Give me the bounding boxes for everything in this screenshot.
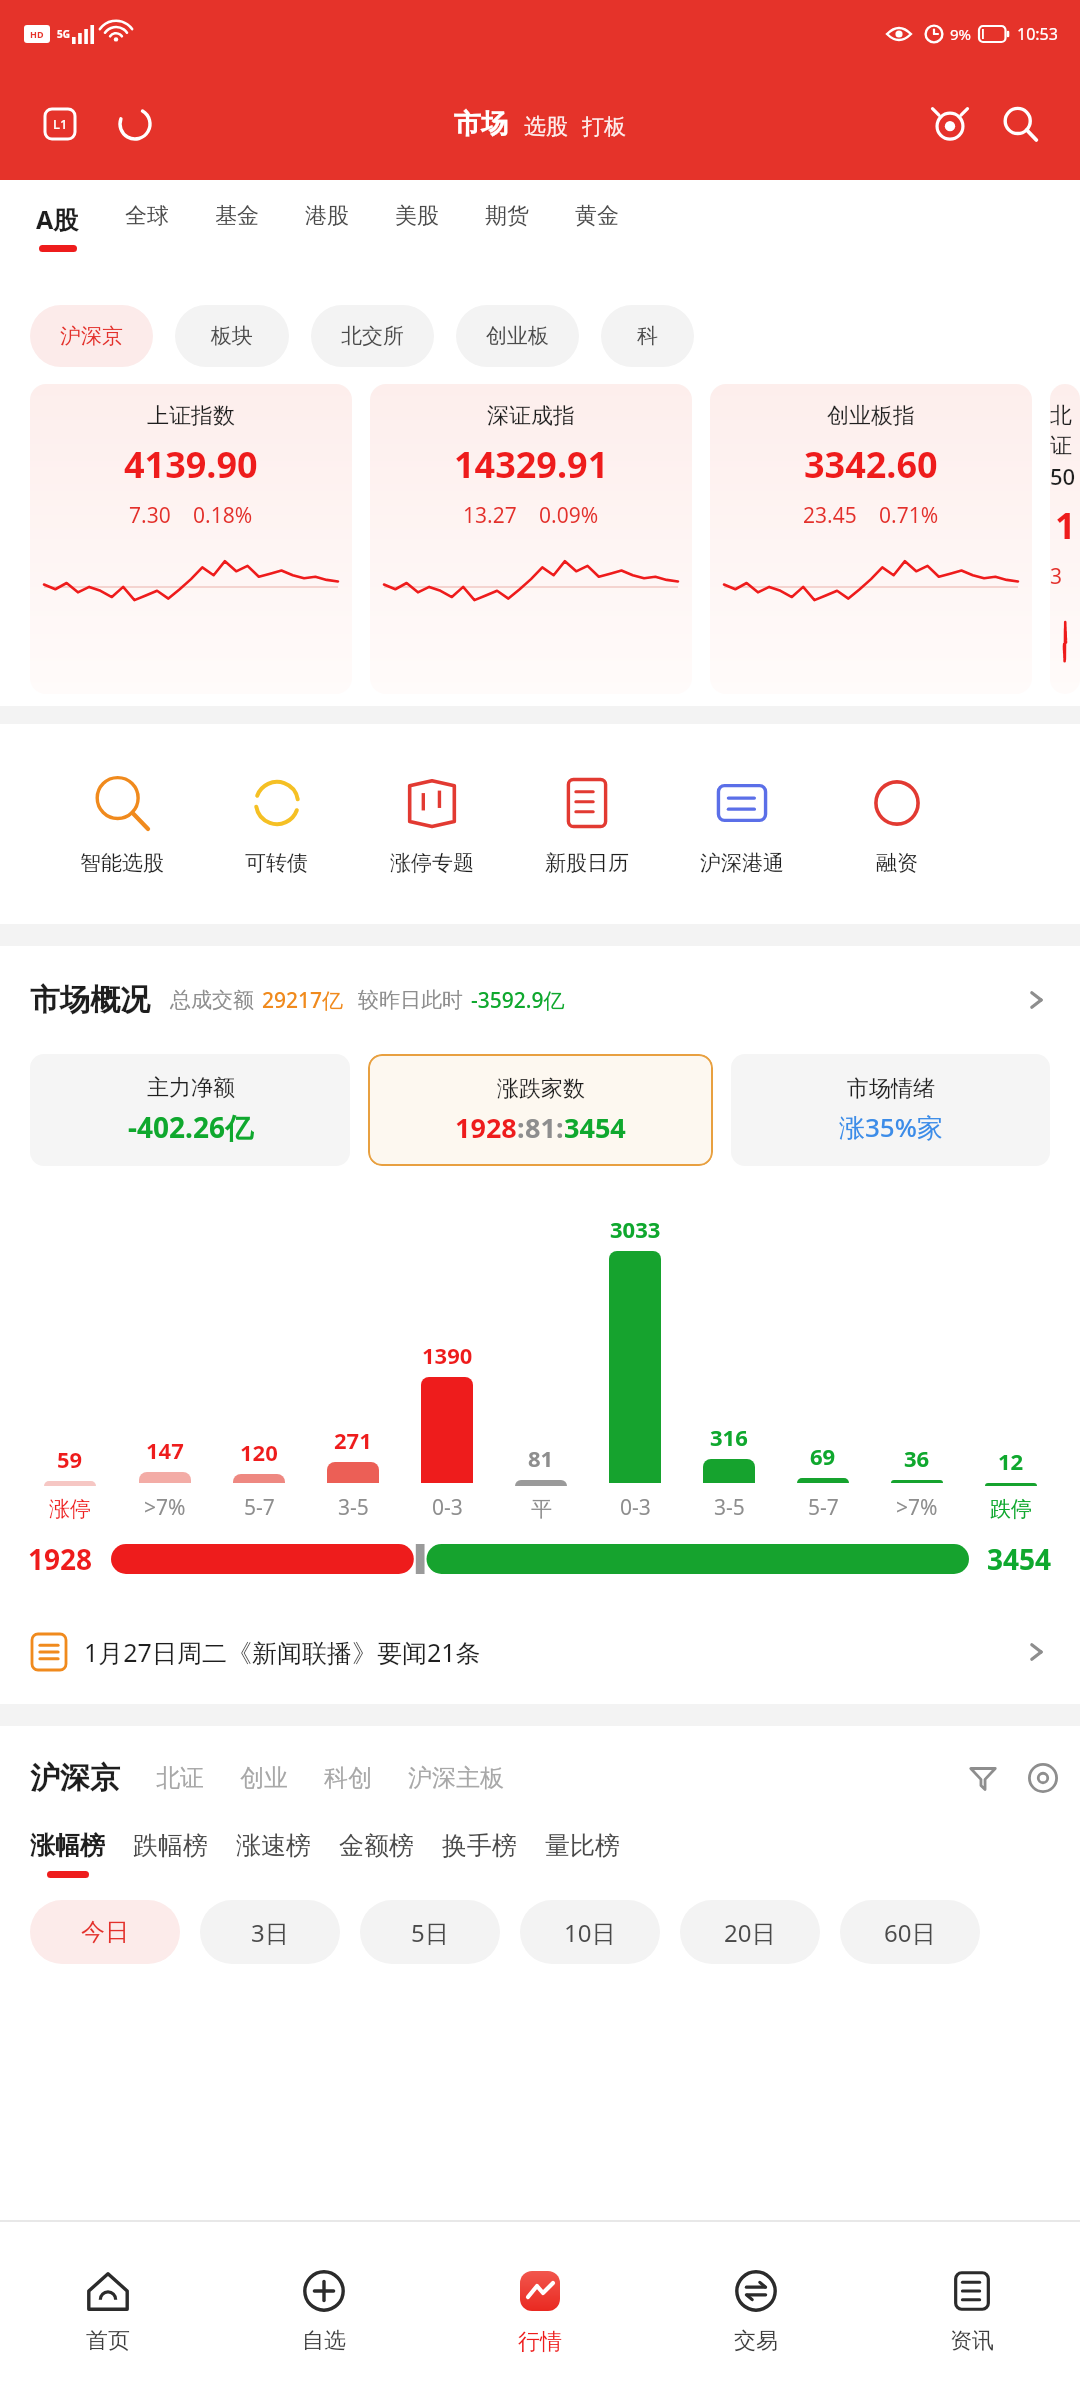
staticText: 创业板指 <box>827 402 915 430</box>
staticText: 涨幅榜 <box>30 1830 105 1861</box>
button[interactable]: 选股 <box>524 113 568 141</box>
button[interactable]: 北交所 <box>311 305 434 367</box>
staticText: 59 <box>57 1444 83 1474</box>
staticText: 5G <box>57 27 70 41</box>
staticText: 0.71% <box>879 501 939 530</box>
button[interactable]: 市场情绪 <box>731 1054 1050 1166</box>
staticText: 沪深京 <box>60 323 123 349</box>
staticText: 3 <box>1050 562 1063 591</box>
button[interactable]: 可转债 <box>199 764 354 884</box>
button[interactable]: 深证成指 <box>370 384 692 694</box>
staticText: 市场情绪 <box>847 1075 935 1103</box>
staticText: 沪深港通 <box>700 850 784 876</box>
button[interactable]: 沪深京 <box>30 1759 120 1797</box>
staticText: 3342.60 <box>804 440 938 489</box>
staticText: 跌幅榜 <box>133 1830 208 1861</box>
button[interactable]: Filter <box>966 1761 1000 1795</box>
button[interactable]: 全球 <box>119 202 175 246</box>
button[interactable]: 行情 <box>432 2222 648 2400</box>
button[interactable]: 智能选股 <box>44 764 199 884</box>
staticText: 13.27 <box>463 501 517 530</box>
button[interactable]: 市场概况 <box>0 946 1080 1054</box>
button[interactable]: 主力净额 <box>30 1054 350 1166</box>
button[interactable]: 创业 <box>240 1763 288 1793</box>
staticText: 29217亿 <box>262 986 344 1015</box>
button[interactable]: 港股 <box>299 202 355 246</box>
button[interactable]: 涨停专题 <box>354 764 509 884</box>
staticText: 0-3 <box>432 1493 463 1522</box>
button[interactable]: 创业板指 <box>710 384 1032 694</box>
button[interactable]: A股 <box>30 202 85 252</box>
staticText: 3-5 <box>338 1493 369 1522</box>
staticText: -402.26亿 <box>128 1108 253 1146</box>
staticText: 总成交额 <box>170 987 254 1013</box>
button[interactable]: 60日 <box>840 1900 980 1964</box>
button[interactable]: 期货 <box>479 202 535 246</box>
staticText: 1928 <box>455 1109 517 1146</box>
button[interactable]: 首页 <box>0 2222 216 2400</box>
staticText: 5日 <box>411 1916 449 1949</box>
button[interactable]: 市场 <box>454 107 508 141</box>
button[interactable]: Settings <box>1026 1761 1060 1795</box>
button[interactable]: Alerts <box>926 100 974 148</box>
button[interactable]: 融资 <box>819 764 974 884</box>
button[interactable]: 换手榜 <box>442 1830 517 1878</box>
button[interactable]: 金额榜 <box>339 1830 414 1878</box>
button[interactable]: 板块 <box>175 305 289 367</box>
button[interactable]: 沪深主板 <box>408 1763 504 1793</box>
button[interactable]: Level 1 <box>40 104 80 144</box>
staticText: 60日 <box>884 1916 936 1949</box>
button[interactable]: 涨速榜 <box>236 1830 311 1878</box>
button[interactable]: 跌幅榜 <box>133 1830 208 1878</box>
button[interactable]: 北证 <box>156 1763 204 1793</box>
button[interactable]: 基金 <box>209 202 265 246</box>
button[interactable]: Night mode <box>114 103 156 145</box>
staticText: 1 <box>1055 501 1076 550</box>
button[interactable]: 涨幅榜 <box>30 1830 105 1878</box>
staticText: HD <box>30 28 44 40</box>
staticText: 期货 <box>485 202 529 230</box>
staticText: 1390 <box>422 1340 473 1370</box>
button[interactable]: 上证指数 <box>30 384 352 694</box>
button[interactable]: 沪深京 <box>30 305 153 367</box>
staticText: 涨停专题 <box>390 850 474 876</box>
button[interactable]: 资讯 <box>864 2222 1080 2400</box>
staticText: 81 <box>525 1109 556 1146</box>
button[interactable]: 20日 <box>680 1900 820 1964</box>
button[interactable]: 科 <box>601 305 694 367</box>
button[interactable]: 科创 <box>324 1763 372 1793</box>
other: More <box>1024 987 1050 1013</box>
button[interactable]: 今日 <box>30 1900 180 1964</box>
staticText: 23.45 <box>803 501 857 530</box>
button[interactable]: 新股日历 <box>509 764 664 884</box>
button[interactable]: 北证50 <box>1050 384 1080 694</box>
button[interactable]: 3日 <box>200 1900 340 1964</box>
staticText: 36 <box>904 1443 930 1473</box>
button[interactable]: 1月27日周二《新闻联播》要闻21条 <box>0 1600 1080 1704</box>
button[interactable]: 10日 <box>520 1900 660 1964</box>
staticText: 20日 <box>724 1916 776 1949</box>
button[interactable]: 美股 <box>389 202 445 246</box>
staticText: 量比榜 <box>545 1830 620 1861</box>
button[interactable]: 自选 <box>216 2222 432 2400</box>
button[interactable]: 交易 <box>648 2222 864 2400</box>
staticText: 融资 <box>876 850 918 876</box>
staticText: 上证指数 <box>147 402 235 430</box>
staticText: 跌停 <box>990 1496 1032 1522</box>
button[interactable]: 5日 <box>360 1900 500 1964</box>
staticText: 涨跌家数 <box>497 1075 585 1103</box>
staticText: >7% <box>144 1493 186 1522</box>
button[interactable]: 黄金 <box>569 202 625 246</box>
button[interactable]: 涨跌家数 <box>368 1054 713 1166</box>
button[interactable]: 量比榜 <box>545 1830 620 1878</box>
button[interactable]: Search <box>996 100 1044 148</box>
button[interactable]: 打板 <box>582 113 626 141</box>
button[interactable]: 创业板 <box>456 305 579 367</box>
staticText: 1928 <box>28 1540 93 1578</box>
staticText: 1月27日周二《新闻联播》要闻21条 <box>84 1635 481 1669</box>
staticText: 北证50 <box>1050 402 1080 491</box>
staticText: 316 <box>710 1422 748 1452</box>
staticText: A股 <box>36 202 79 236</box>
staticText: 3-5 <box>714 1493 745 1522</box>
button[interactable]: 沪深港通 <box>664 764 819 884</box>
